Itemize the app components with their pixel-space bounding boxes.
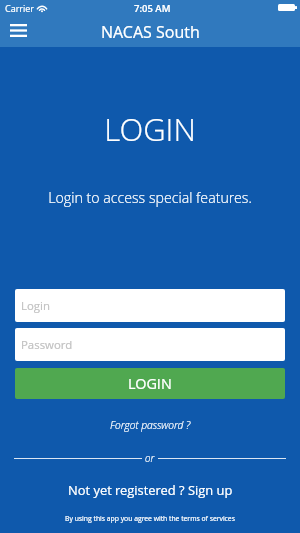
staticText: or bbox=[145, 451, 155, 465]
staticText: By using this app you agree with the ter… bbox=[0, 514, 300, 523]
staticText: Carrier bbox=[5, 2, 35, 14]
staticText: NACAS South bbox=[101, 21, 200, 43]
button[interactable]: Password bbox=[15, 328, 285, 361]
button[interactable]: Login bbox=[15, 289, 285, 322]
staticText: LOGIN bbox=[0, 108, 300, 150]
staticText: Password bbox=[21, 337, 73, 353]
staticText: Login to access special features. bbox=[0, 188, 300, 207]
button[interactable]: LOGIN bbox=[15, 368, 285, 399]
staticText: Forgot password ? bbox=[110, 418, 191, 432]
staticText: Login bbox=[21, 298, 50, 314]
button[interactable]: Menu bbox=[3, 18, 33, 42]
staticText: 7:05 AM bbox=[134, 2, 171, 15]
button[interactable]: Forgot password ? bbox=[0, 416, 300, 434]
button[interactable]: Not yet registered ? Sign up bbox=[0, 479, 300, 501]
staticText: LOGIN bbox=[128, 374, 172, 394]
staticText: Not yet registered ? Sign up bbox=[68, 481, 233, 499]
